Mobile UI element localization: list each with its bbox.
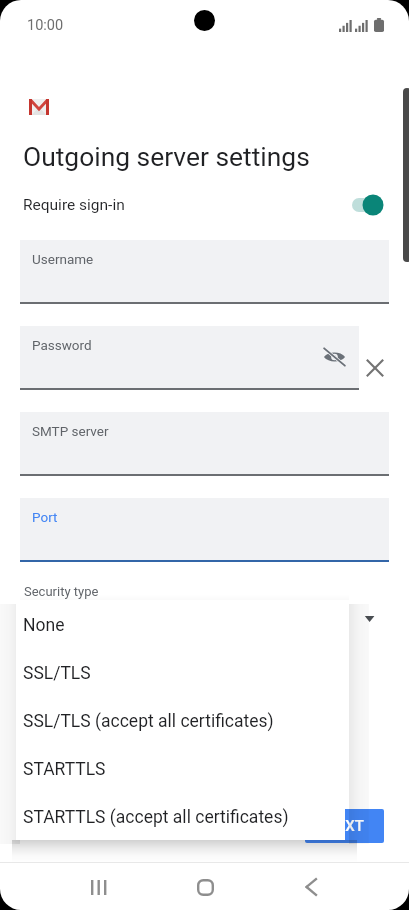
button[interactable]: Require sign-in xyxy=(23,188,392,222)
button[interactable]: Password xyxy=(20,326,359,390)
staticText: Require sign-in xyxy=(23,196,125,214)
button[interactable]: Back xyxy=(291,867,331,907)
button[interactable]: STARTTLS xyxy=(16,744,345,792)
staticText: Port xyxy=(32,509,58,525)
staticText: Username xyxy=(32,251,94,267)
button[interactable]: Home xyxy=(185,867,225,907)
staticText: Password xyxy=(32,337,92,353)
staticText: SSL/TLS (accept all certificates) xyxy=(23,711,274,732)
button[interactable]: Recent apps xyxy=(78,867,118,907)
button[interactable]: Clear password xyxy=(361,354,389,382)
button[interactable]: SSL/TLS (accept all certificates) xyxy=(16,696,345,744)
button[interactable]: SSL/TLS xyxy=(16,648,345,696)
staticText: Security type xyxy=(24,584,99,599)
button[interactable]: None xyxy=(16,600,345,648)
staticText: SSL/TLS xyxy=(23,663,91,684)
button[interactable]: NEXT xyxy=(305,809,384,843)
button[interactable]: Expand security type xyxy=(361,608,381,628)
button[interactable]: Username xyxy=(20,240,389,304)
button[interactable]: Show password xyxy=(321,344,347,370)
staticText: None xyxy=(23,615,65,636)
button[interactable]: SMTP server xyxy=(20,412,389,476)
staticText: Outgoing server settings xyxy=(23,142,310,173)
staticText: STARTTLS xyxy=(23,759,106,780)
button[interactable]: Port xyxy=(20,498,389,562)
staticText: STARTTLS (accept all certificates) xyxy=(23,807,289,828)
staticText: 10:00 xyxy=(27,17,64,34)
button[interactable]: STARTTLS (accept all certificates) xyxy=(16,792,345,840)
staticText: SMTP server xyxy=(32,423,109,439)
staticText: NEXT xyxy=(326,817,364,835)
